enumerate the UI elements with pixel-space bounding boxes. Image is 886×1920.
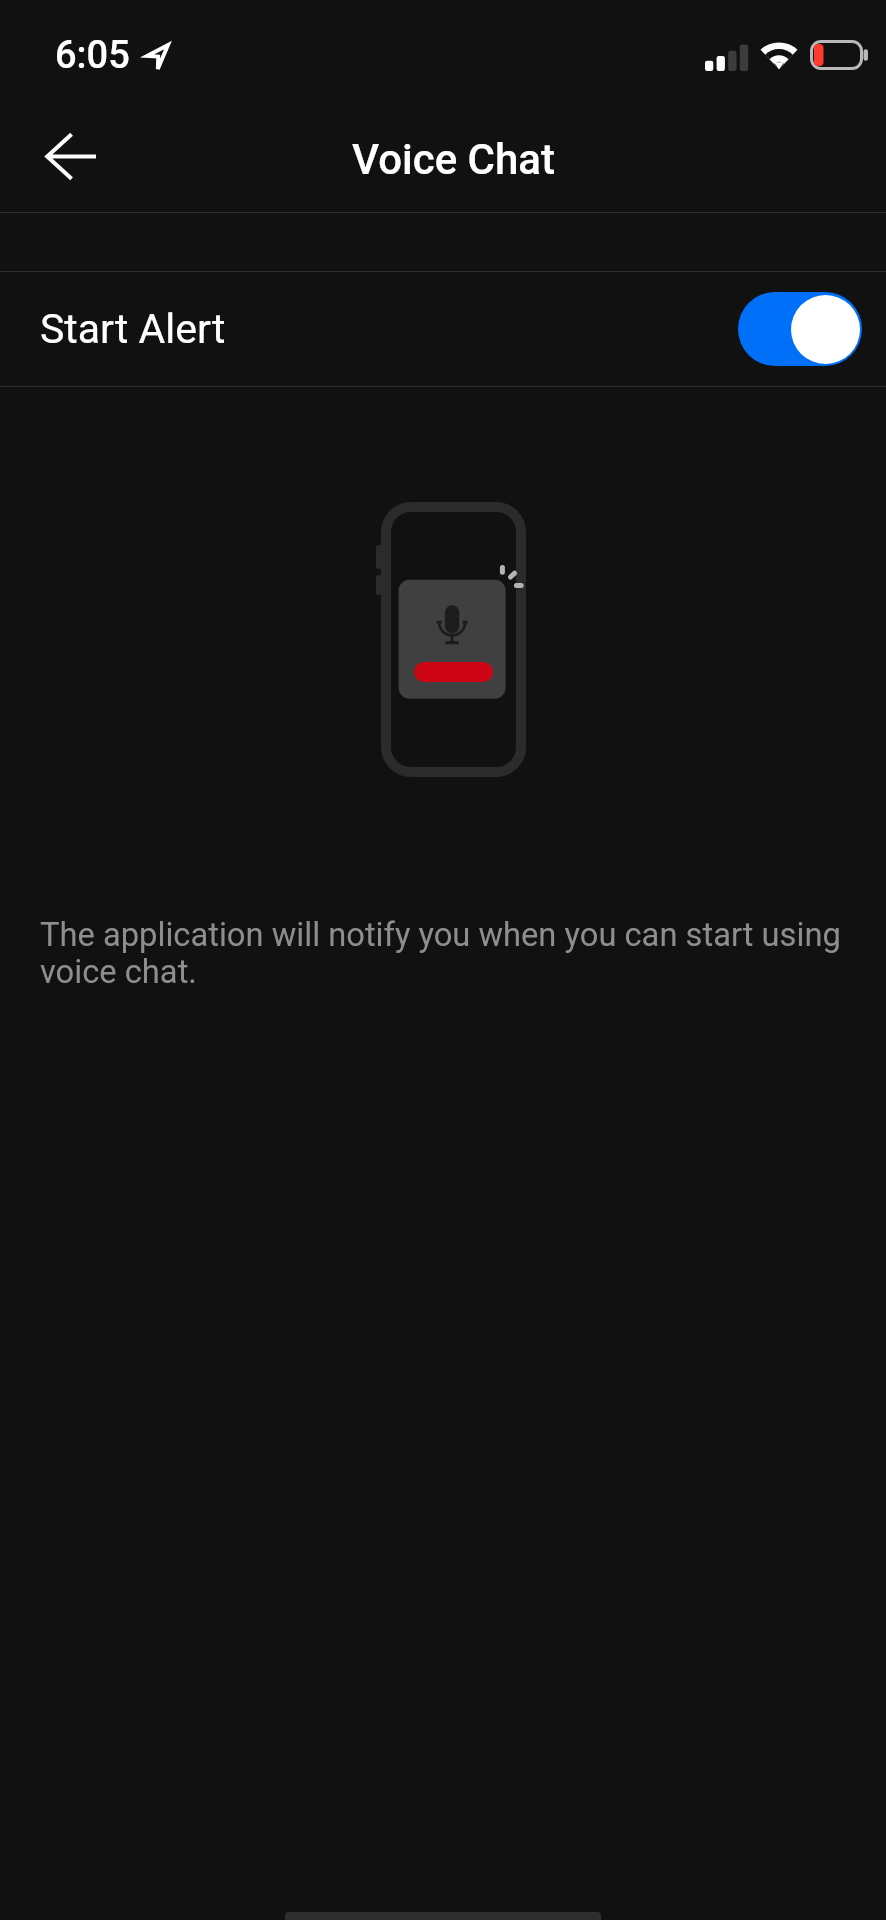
staticText: The application will notify you when you… [40,916,854,991]
staticText: Start Alert [40,305,226,353]
staticText: Voice Chat [352,135,555,184]
staticText: 6:05 [55,33,130,78]
button[interactable]: Start Alert toggle [738,292,862,366]
button[interactable]: Start Alert [0,272,886,386]
button[interactable]: Back [25,110,117,202]
